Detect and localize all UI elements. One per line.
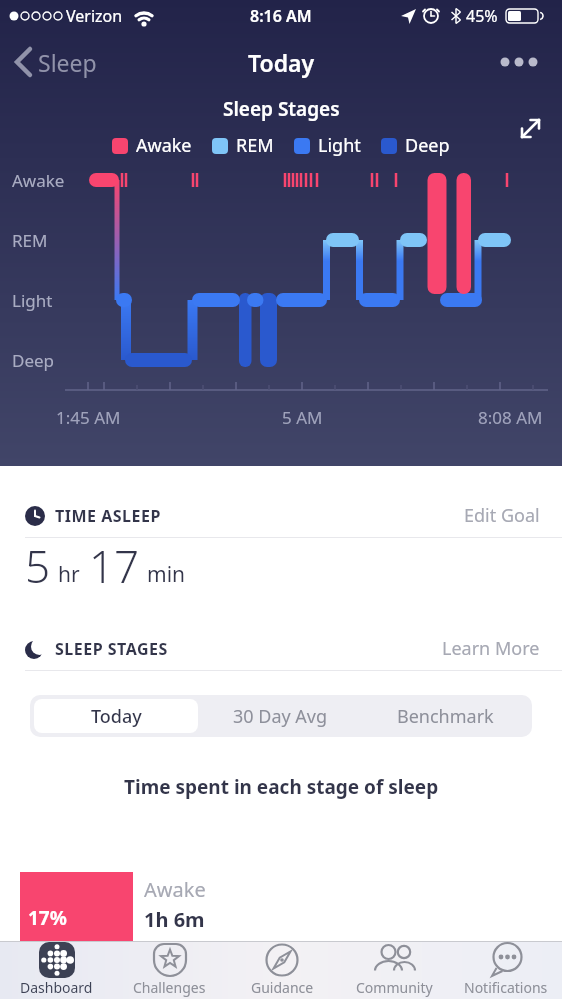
staticText: Deep xyxy=(12,349,55,372)
staticText: 17% xyxy=(28,905,67,931)
staticText: Dashboard xyxy=(20,978,93,997)
staticText: Awake xyxy=(136,133,192,158)
button[interactable]: 17% xyxy=(20,872,133,941)
button[interactable]: Learn More xyxy=(442,636,540,661)
button[interactable]: Community xyxy=(338,941,450,999)
staticText: Deep xyxy=(405,133,450,158)
staticText: SLEEP STAGES xyxy=(55,638,168,660)
staticText: Challenges xyxy=(133,978,206,997)
staticText: TIME ASLEEP xyxy=(55,505,161,527)
staticText: 1h 6m xyxy=(144,906,205,933)
button[interactable]: Guidance xyxy=(226,941,338,999)
staticText: REM xyxy=(236,133,274,158)
button[interactable]: 30 Day Avg xyxy=(198,699,363,733)
button[interactable]: Dashboard xyxy=(0,941,113,999)
button[interactable]: Challenges xyxy=(113,941,226,999)
staticText: 5 xyxy=(25,536,51,596)
staticText: Community xyxy=(356,978,433,997)
staticText: Learn More xyxy=(442,636,540,661)
button[interactable] xyxy=(510,108,554,152)
button[interactable]: Edit Goal xyxy=(464,503,540,528)
staticText: Guidance xyxy=(251,978,314,997)
staticText: 8:16 AM xyxy=(250,5,312,27)
staticText: 45% xyxy=(466,5,498,27)
staticText: Time spent in each stage of sleep xyxy=(124,774,439,800)
staticText: REM xyxy=(12,229,48,252)
staticText: Awake xyxy=(144,876,206,903)
button[interactable]: Notifications xyxy=(450,941,562,999)
button[interactable]: Today xyxy=(34,699,198,733)
button[interactable]: Benchmark xyxy=(363,699,528,733)
staticText: min xyxy=(147,560,186,589)
staticText: Sleep Stages xyxy=(223,96,340,122)
staticText: Today xyxy=(91,704,142,729)
button[interactable]: Sleep xyxy=(8,38,128,86)
staticText: Benchmark xyxy=(397,704,494,729)
staticText: Today xyxy=(248,47,315,78)
staticText: 30 Day Avg xyxy=(233,704,328,729)
button[interactable] xyxy=(494,40,550,84)
staticText: Verizon xyxy=(66,5,123,27)
staticText: Light xyxy=(12,289,53,312)
staticText: Edit Goal xyxy=(464,503,540,528)
staticText: 5 AM xyxy=(282,406,323,429)
staticText: Awake xyxy=(12,169,65,192)
staticText: Sleep xyxy=(38,47,97,78)
staticText: hr xyxy=(58,560,80,589)
staticText: 17 xyxy=(89,536,140,596)
staticText: 8:08 AM xyxy=(478,406,543,429)
staticText: Notifications xyxy=(464,978,548,997)
staticText: 1:45 AM xyxy=(56,406,121,429)
staticText: Light xyxy=(318,133,361,158)
